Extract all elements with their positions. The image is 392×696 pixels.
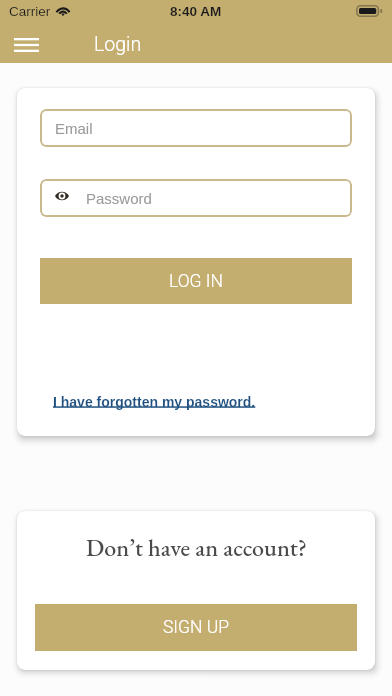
- button[interactable]: I have forgotten my password.: [53, 394, 256, 410]
- staticText: SIGN UP: [163, 617, 229, 638]
- staticText: 8:40 AM: [170, 4, 222, 19]
- staticText: Login: [94, 33, 142, 56]
- staticText: I have forgotten my password.: [53, 394, 256, 410]
- button[interactable]: Email: [40, 109, 352, 147]
- button[interactable]: LOG IN: [40, 258, 352, 304]
- button[interactable]: SIGN UP: [35, 604, 357, 651]
- staticText: Password: [86, 190, 152, 207]
- staticText: Email: [55, 120, 93, 137]
- staticText: Carrier: [9, 4, 51, 19]
- button[interactable]: Password: [40, 179, 352, 217]
- button[interactable]: Open navigation menu: [5, 24, 47, 65]
- staticText: Don’t have an account?: [86, 532, 307, 563]
- staticText: LOG IN: [169, 271, 223, 292]
